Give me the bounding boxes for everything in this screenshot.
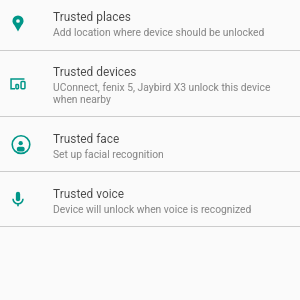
staticText: Device will unlock when voice is recogni… — [53, 203, 252, 215]
other: Trusted devices — [0, 64, 38, 104]
staticText: Set up facial recognition — [53, 148, 164, 160]
staticText: UConnect, fenix 5, Jaybird X3 unlock thi… — [53, 81, 288, 106]
other: Trusted voice — [0, 179, 38, 219]
staticText: Trusted face — [53, 132, 120, 146]
button[interactable]: Trusted face — [0, 117, 300, 171]
other: Trusted face — [1, 124, 41, 164]
button[interactable]: Trusted devices — [0, 51, 300, 116]
staticText: Trusted places — [53, 10, 131, 24]
button[interactable]: Trusted voice — [0, 172, 300, 226]
staticText: Trusted voice — [53, 187, 125, 201]
other: Trusted places — [0, 5, 38, 45]
staticText: Add location where device should be unlo… — [53, 26, 265, 38]
staticText: Trusted devices — [53, 65, 137, 79]
button[interactable]: Trusted places — [0, 0, 300, 50]
